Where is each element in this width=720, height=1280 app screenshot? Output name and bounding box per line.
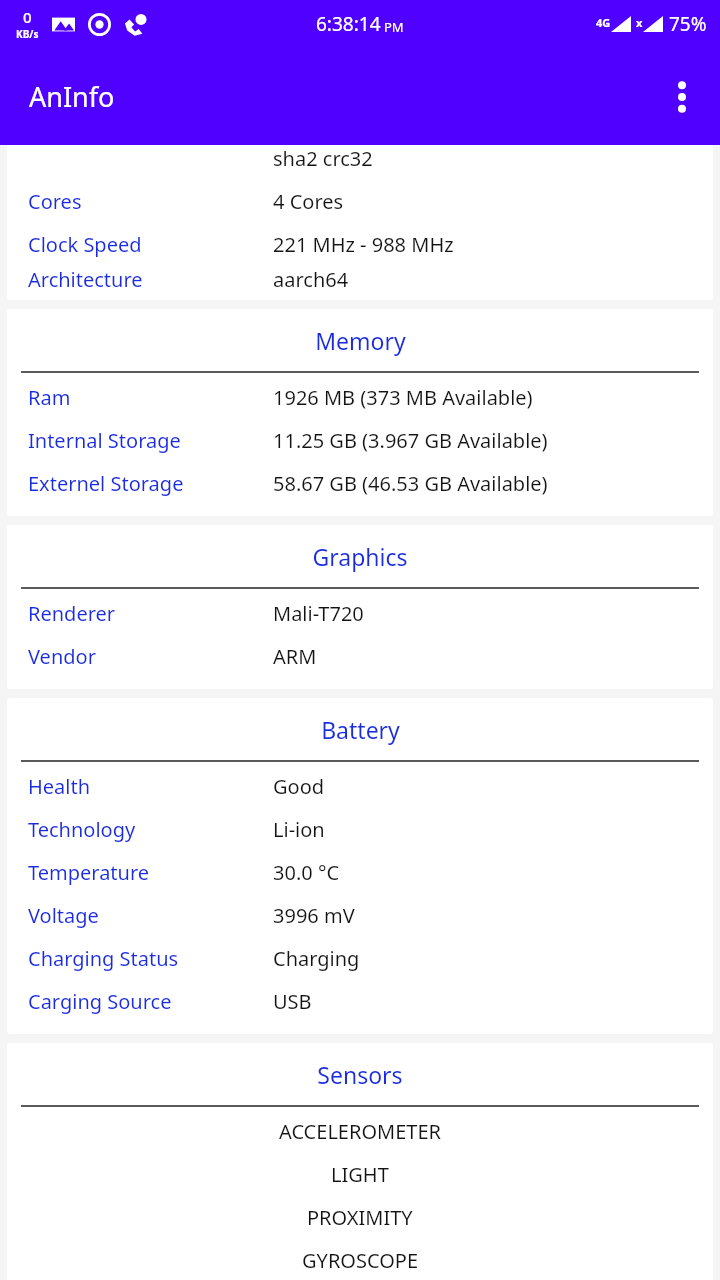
staticText: 3996 mV <box>273 902 355 929</box>
button[interactable]: Sensors <box>7 1043 713 1280</box>
staticText: 1926 MB (373 MB Available) <box>273 384 533 411</box>
staticText: Temperature <box>28 859 150 886</box>
staticText: Battery <box>321 714 400 745</box>
staticText: 30.0 °C <box>273 859 340 886</box>
staticText: 75% <box>669 11 707 37</box>
button[interactable]: Battery <box>7 698 713 1034</box>
staticText: aarch64 <box>273 266 349 292</box>
staticText: Vendor <box>28 643 96 670</box>
staticText: Mali-T720 <box>273 600 364 627</box>
staticText: Ram <box>28 384 71 411</box>
staticText: PROXIMITY <box>307 1204 413 1231</box>
staticText: x <box>636 15 643 30</box>
staticText: 58.67 GB (46.53 GB Available) <box>273 470 548 497</box>
staticText: Carging Source <box>28 988 172 1015</box>
staticText: Internal Storage <box>28 427 181 454</box>
staticText: 0 <box>23 7 32 27</box>
staticText: 4G <box>596 15 611 30</box>
staticText: Li-ion <box>273 816 325 843</box>
staticText: Health <box>28 773 91 800</box>
staticText: PM <box>384 18 404 36</box>
staticText: 11.25 GB (3.967 GB Available) <box>273 427 548 454</box>
staticText: Technology <box>28 816 136 843</box>
staticText: Charging <box>273 945 360 972</box>
staticText: USB <box>273 988 312 1015</box>
staticText: Sensors <box>317 1059 403 1090</box>
staticText: AnInfo <box>29 78 115 115</box>
staticText: KB/s <box>16 27 39 41</box>
staticText: LIGHT <box>331 1161 389 1188</box>
staticText: ARM <box>273 643 317 670</box>
staticText: 221 MHz - 988 MHz <box>273 231 454 258</box>
staticText: Charging Status <box>28 945 179 972</box>
button[interactable]: sha2 crc32 <box>7 145 713 300</box>
staticText: ACCELEROMETER <box>279 1118 441 1145</box>
staticText: Renderer <box>28 600 116 627</box>
staticText: Cores <box>28 188 82 215</box>
staticText: Good <box>273 773 325 800</box>
staticText: Memory <box>315 325 406 356</box>
button[interactable]: Graphics <box>7 525 713 689</box>
staticText: GYROSCOPE <box>302 1247 418 1274</box>
button[interactable]: More options <box>656 71 708 123</box>
staticText: Voltage <box>28 902 99 929</box>
staticText: Graphics <box>312 541 408 572</box>
staticText: Architecture <box>28 266 143 292</box>
staticText: Externel Storage <box>28 470 184 497</box>
staticText: Clock Speed <box>28 231 142 258</box>
staticText: 4 Cores <box>273 188 344 215</box>
staticText: sha2 crc32 <box>273 145 373 172</box>
staticText: 6:38:14 <box>316 11 381 37</box>
button[interactable]: Memory <box>7 309 713 516</box>
